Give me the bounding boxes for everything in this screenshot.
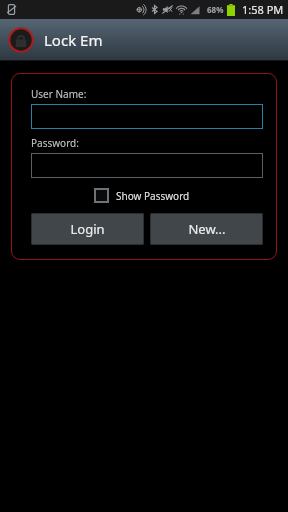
staticText: User Name: xyxy=(31,87,87,101)
staticText: New... xyxy=(188,220,226,238)
staticText: Password: xyxy=(31,136,79,150)
staticText: 1:58 PM xyxy=(242,2,284,17)
button[interactable] xyxy=(31,104,263,129)
button[interactable] xyxy=(31,153,263,178)
button[interactable]: New... xyxy=(150,213,263,245)
button[interactable]: Login xyxy=(31,213,144,245)
staticText: Login xyxy=(70,220,105,238)
button[interactable]: Show Password xyxy=(94,188,190,203)
staticText: 68% xyxy=(207,4,224,15)
staticText: Show Password xyxy=(116,189,190,203)
staticText: Lock Em xyxy=(44,30,103,50)
